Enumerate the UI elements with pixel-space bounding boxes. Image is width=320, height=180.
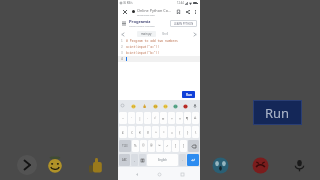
button[interactable]: = <box>168 126 175 138</box>
staticText: ¢ <box>131 130 133 135</box>
button[interactable]: Emoji <box>130 103 136 109</box>
button[interactable]: Bookmark <box>174 7 183 16</box>
button[interactable]: ^ <box>152 126 159 138</box>
staticText: 1 <box>121 39 123 43</box>
staticText: Run <box>265 104 290 122</box>
button[interactable]: English <box>147 154 178 166</box>
staticText: [ <box>175 144 177 148</box>
button[interactable]: LEARN PYTHON <box>170 20 197 27</box>
button[interactable]: Share <box>183 7 192 16</box>
staticText: ∆ <box>194 116 197 120</box>
staticText: € <box>139 130 141 135</box>
staticText: ¥ <box>147 130 149 135</box>
button[interactable]: ° <box>160 126 167 138</box>
button[interactable]: ™ <box>156 140 163 152</box>
button[interactable]: ` <box>128 112 135 124</box>
staticText: 2 <box>121 45 123 49</box>
staticText: ?123 <box>122 144 128 148</box>
staticText: main.py <box>141 32 152 36</box>
staticText: \ <box>195 130 197 135</box>
staticText: programiz.com <box>137 13 155 16</box>
staticText: ° <box>163 130 165 135</box>
button[interactable]: Next emoji page <box>17 155 37 175</box>
button[interactable]: ✓ <box>164 140 171 152</box>
button[interactable]: Run <box>253 100 302 125</box>
button[interactable]: | <box>136 112 143 124</box>
button[interactable]: Shell <box>159 31 172 37</box>
button[interactable]: × <box>176 112 183 124</box>
button[interactable]: € <box>136 126 143 138</box>
button[interactable]: ] <box>180 140 187 152</box>
staticText: | <box>139 116 141 121</box>
button[interactable]: Home <box>155 170 163 178</box>
button[interactable]: Emoji <box>172 103 178 109</box>
button[interactable]: © <box>140 140 147 152</box>
staticText: 4 <box>121 57 123 61</box>
staticText: © <box>142 144 145 148</box>
button[interactable]: Smiling face with halo <box>46 155 64 173</box>
button[interactable]: Pouting face <box>251 156 270 175</box>
button[interactable]: Back <box>133 170 141 178</box>
staticText: , <box>134 158 135 162</box>
button[interactable]: [ <box>172 140 179 152</box>
button[interactable]: ® <box>148 140 155 152</box>
button[interactable]: ÷ <box>168 112 175 124</box>
staticText: · <box>147 116 148 121</box>
button[interactable]: , <box>131 154 138 166</box>
staticText: % <box>134 144 137 148</box>
button[interactable]: Menu <box>121 20 127 26</box>
button[interactable]: Close <box>120 7 129 16</box>
button[interactable]: } <box>184 126 191 138</box>
button[interactable]: Backspace <box>188 140 199 152</box>
staticText: # Program to add two numbers <box>126 39 178 43</box>
staticText: English <box>158 158 167 162</box>
button[interactable]: % <box>132 140 139 152</box>
button[interactable]: · <box>144 112 151 124</box>
button[interactable]: Emoji <box>152 103 158 109</box>
staticText: = <box>171 130 173 135</box>
button[interactable]: ?123 <box>119 140 131 152</box>
button[interactable]: Enter <box>187 154 199 166</box>
button[interactable]: Voice input <box>192 103 198 109</box>
button[interactable]: Emoji <box>182 103 188 109</box>
button[interactable]: Recent apps <box>178 170 186 178</box>
button[interactable]: Switch keyboard <box>139 154 146 166</box>
button[interactable]: ∆ <box>192 112 199 124</box>
button[interactable]: Scroll left <box>120 31 126 37</box>
staticText: a=int(input("a=")) <box>126 45 160 49</box>
staticText: π <box>162 116 165 121</box>
button[interactable]: Voice input <box>290 156 308 174</box>
button[interactable]: { <box>176 126 183 138</box>
button[interactable]: ¥ <box>144 126 151 138</box>
button[interactable]: Face screaming in fear <box>211 156 230 175</box>
staticText: 3 <box>121 51 123 55</box>
button[interactable]: Run <box>182 91 195 98</box>
button[interactable]: Emoji <box>141 103 147 109</box>
staticText: ] <box>183 144 185 148</box>
button[interactable]: ¶ <box>184 112 191 124</box>
button[interactable]: ABC <box>119 154 130 166</box>
button[interactable]: £ <box>119 126 127 138</box>
staticText: LEARN PYTHON <box>174 22 194 26</box>
button[interactable]: ¢ <box>128 126 135 138</box>
staticText: ABC <box>122 158 127 162</box>
button[interactable]: main.py <box>137 31 156 37</box>
button[interactable]: More options <box>192 8 199 15</box>
button[interactable]: √ <box>152 112 159 124</box>
button[interactable]: Suggestions <box>120 103 125 108</box>
staticText: ¶ <box>186 116 189 121</box>
staticText: ™ <box>158 144 161 148</box>
staticText: ^ <box>155 130 157 135</box>
button[interactable]: Scroll right <box>192 31 198 37</box>
staticText: √ <box>154 116 157 120</box>
staticText: × <box>179 116 181 121</box>
button[interactable]: Emoji <box>162 103 168 109</box>
button[interactable]: ~ <box>119 112 127 124</box>
button[interactable]: \ <box>192 126 199 138</box>
staticText: b=int(input("b=")) <box>126 51 160 55</box>
button[interactable]: π <box>160 112 167 124</box>
button[interactable]: Thumbs up <box>87 156 107 176</box>
staticText: ~ <box>122 116 124 121</box>
staticText: ® <box>150 144 153 148</box>
